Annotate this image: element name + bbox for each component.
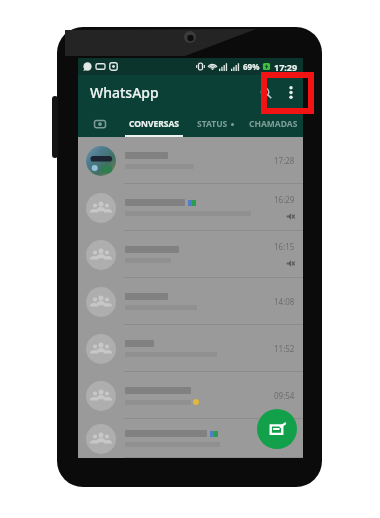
button[interactable]: STATUS xyxy=(186,110,244,137)
button[interactable]: Search xyxy=(253,75,279,110)
button[interactable]: CONVERSAS xyxy=(122,110,186,137)
staticText: CHAMADAS xyxy=(249,118,298,130)
button[interactable]: CHAMADAS xyxy=(244,110,303,137)
button[interactable]: 09:54 xyxy=(78,372,303,419)
staticText: 09:54 xyxy=(274,390,295,401)
button[interactable]: 11:52 xyxy=(78,325,303,372)
button[interactable]: Camera xyxy=(78,110,122,137)
button[interactable]: New chat xyxy=(257,409,297,449)
button[interactable] xyxy=(78,419,303,458)
button[interactable]: 16:29 xyxy=(78,184,303,231)
staticText: CONVERSAS xyxy=(129,118,180,130)
button[interactable]: 17:28 xyxy=(78,137,303,184)
staticText: 69% xyxy=(243,61,260,72)
staticText: 17:28 xyxy=(274,155,295,166)
staticText: 16:15 xyxy=(274,241,295,252)
button[interactable]: 16:15 xyxy=(78,231,303,278)
button[interactable]: More options xyxy=(279,75,303,110)
staticText: 17:29 xyxy=(274,61,298,73)
staticText: STATUS xyxy=(197,118,228,130)
staticText: 14:08 xyxy=(274,296,295,307)
staticText: 11:52 xyxy=(274,343,295,354)
button[interactable]: 14:08 xyxy=(78,278,303,325)
staticText: WhatsApp xyxy=(90,83,159,102)
staticText: 16:29 xyxy=(274,194,295,205)
